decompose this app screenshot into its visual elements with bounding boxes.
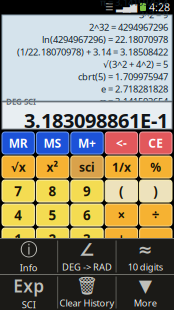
- button[interactable]: ×: [105, 204, 138, 226]
- staticText: 4:28: [149, 0, 170, 14]
- button[interactable]: 0: [71, 252, 103, 274]
- staticText: 3: [83, 230, 91, 248]
- button[interactable]: 6: [71, 204, 103, 226]
- button[interactable]: ÷: [140, 204, 172, 226]
- button[interactable]: Scientific notation: [0, 275, 57, 310]
- staticText: Clear History: [59, 297, 114, 309]
- staticText: ☰: [105, 2, 113, 12]
- staticText: ∠: [79, 240, 95, 260]
- staticText: 7: [14, 182, 22, 200]
- staticText: 9: [83, 182, 91, 200]
- staticText: Info: [20, 261, 38, 274]
- staticText: x²: [47, 159, 59, 175]
- button[interactable]: 8: [36, 180, 69, 202]
- button[interactable]: (: [105, 180, 138, 202]
- button[interactable]: 7: [2, 180, 34, 202]
- staticText: 4: [14, 206, 22, 224]
- button[interactable]: Digits: [117, 239, 174, 274]
- staticText: ⓘ: [20, 239, 37, 260]
- button[interactable]: %: [140, 156, 172, 178]
- staticText: 8: [49, 182, 57, 200]
- staticText: MS: [44, 135, 62, 151]
- staticText: 🗑: [76, 276, 98, 296]
- staticText: 3.183098861E-1: [24, 107, 168, 134]
- button[interactable]: MR: [2, 132, 34, 154]
- staticText: (: [119, 182, 124, 200]
- staticText: 2: [49, 230, 57, 248]
- staticText: DEG -> RAD: [62, 261, 112, 273]
- button[interactable]: +: [105, 228, 138, 250]
- staticText: π = 3.141592654: [100, 95, 168, 108]
- button[interactable]: =: [105, 252, 138, 274]
- button[interactable]: sci: [71, 156, 103, 178]
- button[interactable]: Info: [0, 239, 57, 274]
- button[interactable]: x²: [36, 156, 69, 178]
- button[interactable]: √x: [2, 156, 34, 178]
- button[interactable]: 2: [36, 228, 69, 250]
- button[interactable]: <-: [105, 132, 138, 154]
- staticText: 0: [83, 254, 91, 272]
- button[interactable]: 5: [36, 204, 69, 226]
- staticText: √(3^2 + 4^2) = 5: [103, 58, 168, 70]
- staticText: ≈: [138, 240, 153, 260]
- staticText: Exp: [13, 274, 44, 297]
- button[interactable]: 4: [2, 204, 34, 226]
- button[interactable]: MS: [36, 132, 69, 154]
- staticText: 5: [49, 206, 57, 224]
- staticText: MR: [9, 135, 28, 151]
- button[interactable]: 9: [71, 180, 103, 202]
- staticText: ln(4294967296) = 22.18070978: [42, 33, 168, 46]
- button[interactable]: Degrees to radians: [58, 239, 116, 274]
- staticText: e = 2.718281828: [101, 83, 168, 95]
- staticText: M+: [78, 135, 96, 151]
- staticText: 2^32 = 4294967296: [89, 21, 168, 33]
- button[interactable]: -: [140, 228, 172, 250]
- staticText: +: [117, 230, 125, 248]
- staticText: ▂▄▆: [116, 2, 137, 12]
- button[interactable]: ±: [140, 252, 172, 274]
- staticText: 1: [14, 230, 22, 248]
- button[interactable]: Exp: [2, 252, 34, 274]
- button[interactable]: ): [140, 180, 172, 202]
- staticText: ×: [117, 206, 125, 224]
- button[interactable]: .: [36, 252, 69, 274]
- staticText: 1/x: [112, 159, 131, 175]
- staticText: ): [153, 182, 158, 200]
- staticText: ±: [152, 254, 160, 272]
- staticText: SCI: [22, 298, 36, 310]
- staticText: cbrt(5) = 1.709975947: [78, 70, 168, 83]
- staticText: π = 3.141592654: [100, 0, 168, 8]
- button[interactable]: M+: [71, 132, 103, 154]
- staticText: More: [134, 297, 157, 309]
- staticText: CE: [148, 135, 163, 151]
- staticText: Exp: [7, 255, 29, 271]
- button[interactable]: 1/x: [105, 156, 138, 178]
- button[interactable]: More: [117, 275, 174, 310]
- staticText: ÷: [152, 206, 160, 224]
- staticText: 3^2 = 9: [139, 8, 168, 21]
- button[interactable]: Clear History: [58, 275, 116, 310]
- staticText: 10 digits: [128, 261, 163, 273]
- staticText: (1/3.141592654) = 3.183098861E-1: [26, 108, 168, 120]
- staticText: DEG SCI: [6, 96, 36, 107]
- staticText: -: [154, 230, 158, 248]
- staticText: sci: [79, 159, 95, 175]
- staticText: √x: [11, 159, 26, 175]
- staticText: ▼: [139, 276, 152, 296]
- button[interactable]: 3: [71, 228, 103, 250]
- staticText: <-: [116, 135, 127, 151]
- staticText: 6: [83, 206, 91, 224]
- button[interactable]: 1: [2, 228, 34, 250]
- staticText: %: [150, 159, 161, 175]
- button[interactable]: CE: [140, 132, 172, 154]
- staticText: (1/22.18070978) + 3.14 = 3.18508422: [17, 46, 168, 58]
